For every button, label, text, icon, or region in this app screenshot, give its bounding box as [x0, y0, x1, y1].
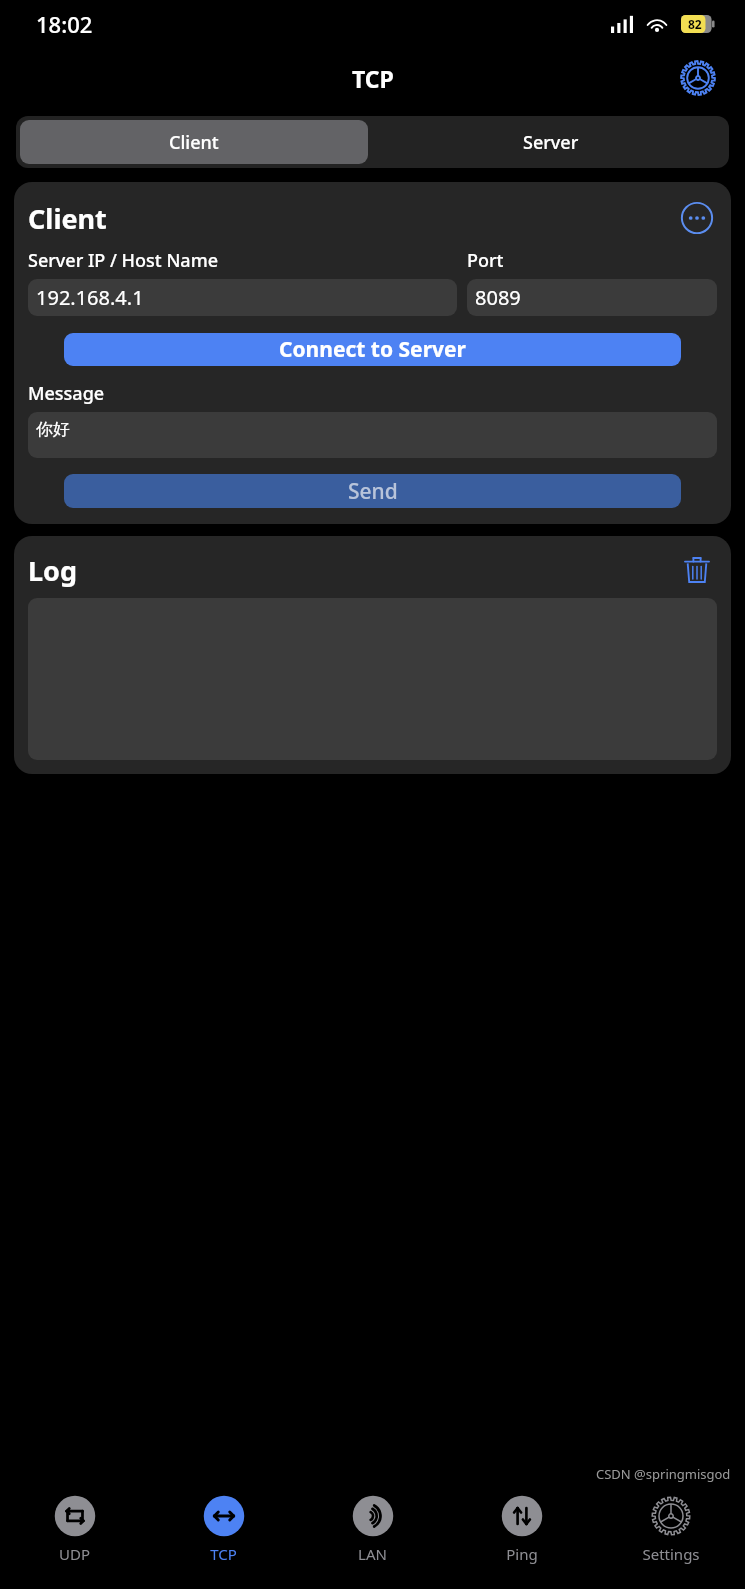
button[interactable]: 你好 [28, 412, 717, 458]
staticText: Ping [506, 1544, 538, 1564]
staticText: Port [467, 248, 504, 273]
button[interactable]: Settings [596, 1483, 745, 1575]
button[interactable]: Ping [447, 1483, 596, 1575]
staticText: UDP [59, 1544, 90, 1564]
staticText: 192.168.4.1 [36, 284, 144, 311]
staticText: TCP [210, 1544, 237, 1564]
staticText: TCP [352, 63, 394, 94]
staticText: 18:02 [36, 9, 93, 39]
staticText: Message [28, 381, 105, 406]
staticText: Send [348, 477, 398, 506]
button[interactable]: Client [20, 120, 368, 164]
staticText: Client [169, 130, 219, 155]
staticText: 你好 [36, 419, 70, 440]
button[interactable]: TCP [149, 1483, 298, 1575]
staticText: CSDN @springmisgod [596, 1465, 731, 1483]
staticText: Connect to Server [279, 335, 466, 364]
button[interactable]: Send [64, 474, 681, 508]
button[interactable]: Connect to Server [64, 333, 681, 366]
staticText: Server IP / Host Name [28, 248, 219, 273]
staticText: 82 [688, 16, 702, 32]
button[interactable]: 192.168.4.1 [28, 279, 457, 316]
button[interactable]: More options [677, 198, 717, 238]
button[interactable]: UDP [0, 1483, 149, 1575]
staticText: Settings [642, 1544, 700, 1564]
staticText: Log [28, 552, 677, 589]
button[interactable]: Settings [675, 55, 721, 101]
button[interactable]: Server [372, 116, 729, 168]
staticText: Client [28, 200, 677, 237]
button[interactable]: LAN [298, 1483, 447, 1575]
staticText: LAN [358, 1544, 387, 1564]
staticText: Server [523, 130, 579, 155]
button[interactable]: 8089 [467, 279, 717, 316]
button[interactable]: Clear log [677, 550, 717, 590]
staticText: 8089 [475, 284, 521, 311]
